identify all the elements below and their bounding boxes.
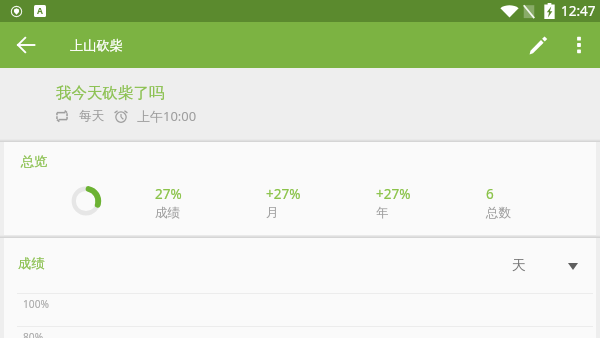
staticText: 年	[376, 205, 389, 221]
button[interactable]: 天	[512, 257, 578, 275]
button[interactable]: Edit	[515, 22, 561, 68]
button[interactable]: Back	[3, 22, 49, 68]
staticText: 成绩	[155, 205, 180, 221]
staticText: +27%	[376, 185, 411, 203]
staticText: 6	[486, 185, 494, 203]
staticText: 每天	[79, 108, 105, 124]
staticText: 天	[512, 257, 526, 275]
staticText: 100%	[23, 297, 49, 311]
staticText: 80%	[23, 330, 44, 338]
staticText: A	[37, 5, 43, 17]
staticText: 我今天砍柴了吗	[56, 83, 165, 103]
staticText: 27%	[155, 185, 182, 203]
staticText: 上山砍柴	[70, 37, 123, 54]
staticText: 12:47	[561, 2, 596, 20]
staticText: 成绩	[18, 255, 45, 272]
staticText: 月	[266, 205, 279, 221]
staticText: 总览	[21, 153, 48, 170]
staticText: +27%	[266, 185, 301, 203]
staticText: 总数	[486, 205, 511, 221]
button[interactable]: More options	[557, 23, 600, 67]
staticText: 上午10:00	[137, 107, 197, 125]
